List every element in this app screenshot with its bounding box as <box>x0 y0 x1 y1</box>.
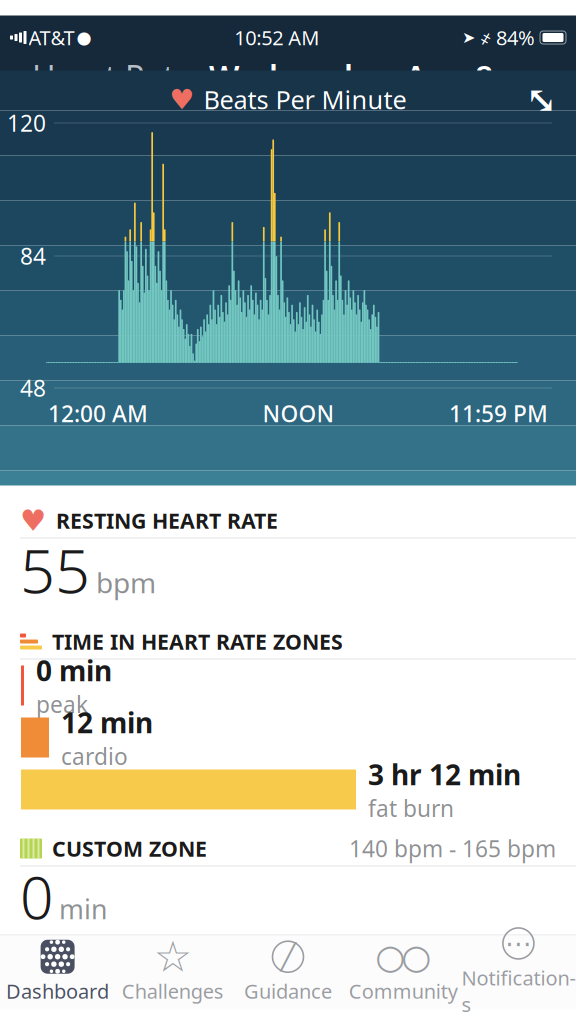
staticText: AT&T <box>28 24 74 51</box>
staticText: NOON <box>262 398 334 428</box>
staticText: Dashboard <box>6 978 109 1004</box>
staticText: 0 <box>20 857 53 935</box>
staticText: TIME IN HEART RATE ZONES <box>52 627 343 656</box>
staticText: 55 <box>20 529 90 610</box>
staticText: 11:59 PM <box>449 398 548 428</box>
staticText: ⤡ <box>525 78 556 121</box>
staticText: 84% <box>496 24 535 51</box>
staticText: ➤ <box>462 28 475 47</box>
staticText: 84 <box>20 241 46 271</box>
staticText: Wednesday, Aug 8 <box>209 55 493 98</box>
button[interactable]: ☆ <box>115 937 230 1007</box>
staticText: cardio <box>61 741 128 771</box>
staticText: ҂ <box>480 25 491 50</box>
staticText: 12 min <box>61 704 153 741</box>
button[interactable]: ‹ <box>0 53 199 99</box>
staticText: fat burn <box>368 793 454 823</box>
staticText: ● <box>76 28 91 47</box>
staticText: ○ <box>401 937 431 976</box>
staticText: 0 min <box>36 652 112 689</box>
staticText: peak <box>36 689 88 719</box>
staticText: ☆ <box>154 932 192 981</box>
staticText: ♥ <box>169 84 194 115</box>
button[interactable]: ╱ <box>230 937 346 1007</box>
button[interactable]: Expand chart <box>518 76 564 122</box>
button[interactable]: ○ <box>346 937 461 1007</box>
staticText: ○ <box>375 937 405 976</box>
staticText: Guidance <box>244 978 332 1004</box>
staticText: bpm <box>96 564 156 601</box>
staticText: Notifications <box>461 964 575 1017</box>
staticText: ⋯ <box>505 928 532 959</box>
staticText: 140 bpm - 165 bpm <box>349 833 556 863</box>
staticText: 10:52 AM <box>234 24 319 51</box>
staticText: Beats Per Minute <box>203 83 406 116</box>
staticText: ♥ <box>20 504 46 537</box>
staticText: 120 <box>7 108 46 138</box>
staticText: Heart Rate <box>32 55 193 98</box>
button[interactable]: Dashboard <box>0 937 115 1007</box>
staticText: 3 hr 12 min <box>368 756 521 793</box>
staticText: ╱ <box>280 942 295 971</box>
button[interactable]: ⋯ <box>461 937 576 1007</box>
staticText: Community <box>349 978 458 1004</box>
staticText: RESTING HEART RATE <box>56 506 278 535</box>
staticText: 48 <box>20 373 46 403</box>
staticText: ‹ <box>14 41 28 112</box>
staticText: min <box>59 891 107 927</box>
staticText: Challenges <box>122 978 224 1004</box>
staticText: CUSTOM ZONE <box>52 834 207 863</box>
staticText: 12:00 AM <box>48 398 148 428</box>
